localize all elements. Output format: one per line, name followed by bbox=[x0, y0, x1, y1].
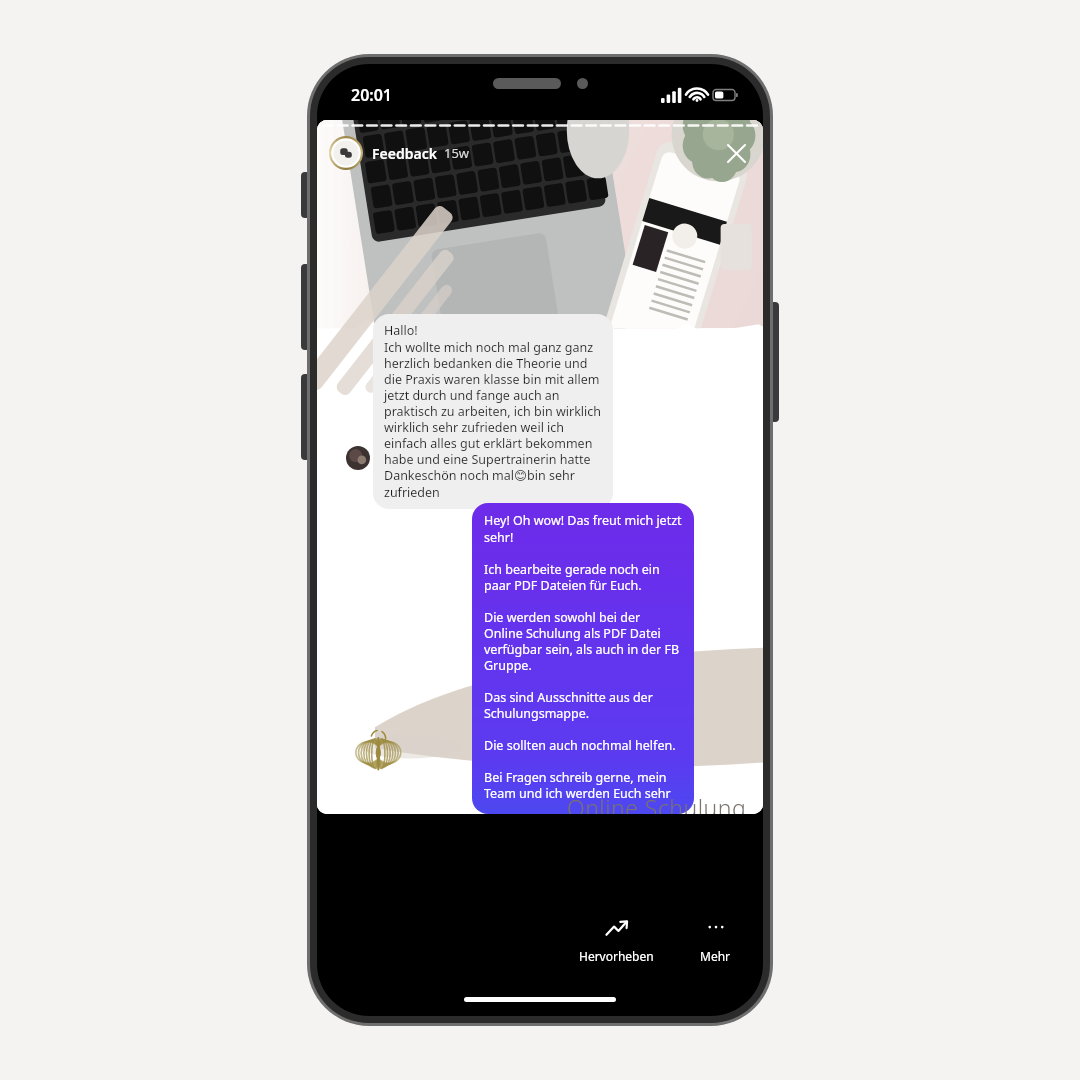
staticText: 15w bbox=[444, 144, 470, 162]
staticText: Hey! Oh wow! Das freut mich jetzt sehr! … bbox=[484, 512, 682, 805]
staticText: Mehr bbox=[700, 948, 731, 964]
button[interactable]: Hey! Oh wow! Das freut mich jetzt sehr! … bbox=[472, 503, 694, 814]
button[interactable]: Mehr bbox=[694, 913, 737, 968]
button[interactable]: Profilbild bbox=[329, 136, 363, 170]
button[interactable]: Hallo! Ich wollte mich noch mal ganz gan… bbox=[373, 314, 613, 509]
staticText: Feedback bbox=[372, 144, 437, 163]
button[interactable]: Hervorheben bbox=[573, 913, 660, 968]
staticText: 20:01 bbox=[351, 84, 393, 106]
button[interactable]: Schließen bbox=[721, 138, 751, 168]
staticText: Online Schulung bbox=[567, 792, 747, 814]
staticText: Hervorheben bbox=[579, 948, 654, 964]
staticText: Hallo! Ich wollte mich noch mal ganz gan… bbox=[384, 322, 602, 501]
